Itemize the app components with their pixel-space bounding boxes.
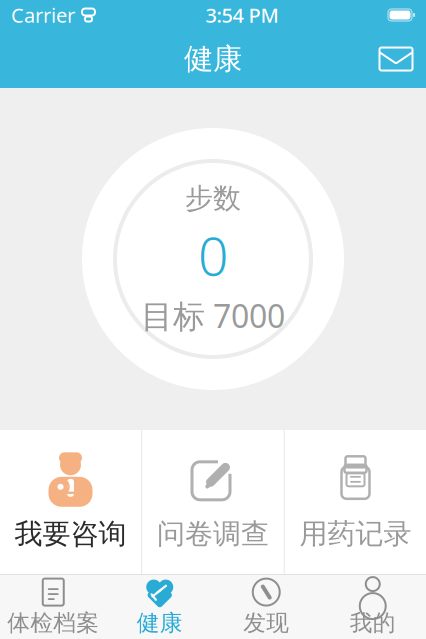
button[interactable]: 用药记录 (285, 430, 426, 574)
staticText: 步数 (185, 181, 241, 215)
staticText: 体检档案 (7, 609, 99, 637)
button[interactable]: 体检档案 (0, 575, 106, 639)
staticText: 我要咨询 (14, 517, 126, 551)
staticText: Carrier (11, 2, 75, 28)
button[interactable]: 我的 (319, 575, 426, 639)
staticText: 3:54 PM (205, 2, 278, 28)
button[interactable]: 发现 (213, 575, 319, 639)
staticText: 目标 7000 (141, 294, 285, 337)
staticText: 我的 (350, 609, 396, 637)
staticText: 0 (198, 219, 228, 290)
staticText: 发现 (243, 609, 289, 637)
button[interactable]: 我要咨询 (0, 430, 141, 574)
staticText: 问卷调查 (157, 517, 269, 551)
button[interactable]: 问卷调查 (142, 430, 284, 574)
button[interactable]: 健康 (106, 575, 213, 639)
button[interactable]: Messages (374, 37, 418, 81)
staticText: 用药记录 (299, 517, 411, 551)
staticText: 健康 (184, 41, 242, 77)
staticText: 健康 (137, 609, 183, 637)
